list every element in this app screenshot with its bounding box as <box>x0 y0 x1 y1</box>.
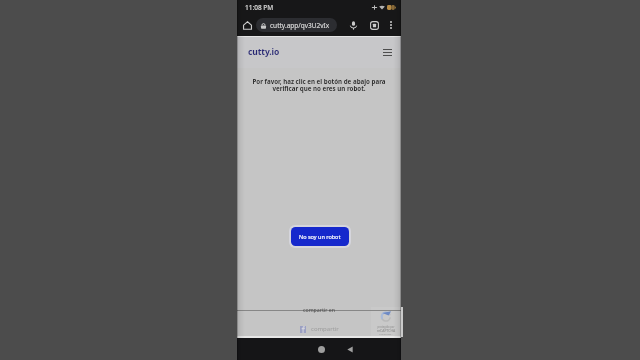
staticText: compartir en <box>237 306 401 313</box>
button[interactable]: compartir <box>300 325 339 333</box>
staticText: protegido por <box>375 325 397 329</box>
button[interactable]: Back <box>343 342 357 356</box>
staticText: reCAPTCHA <box>375 328 397 333</box>
button[interactable]: Voice search <box>344 16 362 34</box>
staticText: compartir <box>311 325 339 333</box>
button[interactable]: Home <box>314 342 328 356</box>
staticText: No soy un robot <box>299 233 341 240</box>
staticText: cutty.app/qv3U2vIx <box>270 21 330 30</box>
button[interactable]: cutty.app/qv3U2vIx <box>256 18 337 32</box>
button[interactable]: Home <box>238 16 256 34</box>
staticText: Privacidad - Condiciones <box>373 332 399 338</box>
button[interactable]: No soy un robot <box>291 227 349 246</box>
staticText: 11:08 PM <box>245 3 274 12</box>
button[interactable]: Menu <box>378 43 396 61</box>
button[interactable]: Switch tabs <box>365 16 383 34</box>
staticText: Por favor, haz clic en el botón de abajo… <box>248 77 390 93</box>
button[interactable]: More options <box>382 16 400 34</box>
button[interactable]: cutty.io <box>248 46 280 58</box>
